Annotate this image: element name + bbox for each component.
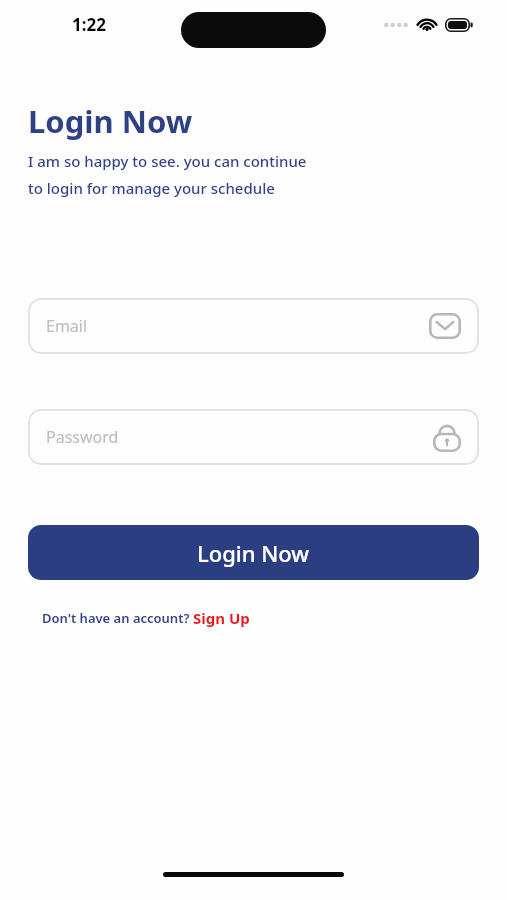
button[interactable]: Login Now (28, 525, 479, 580)
staticText: 1:22 (72, 13, 106, 36)
button[interactable]: Email (28, 298, 479, 354)
other: Email (429, 313, 461, 339)
button[interactable]: Password (28, 409, 479, 465)
staticText: Login Now (28, 100, 193, 142)
button[interactable]: Don't have an account? (42, 608, 250, 628)
staticText: Don't have an account? (42, 609, 193, 627)
staticText: Email (46, 315, 429, 337)
staticText: Sign Up (193, 608, 250, 628)
staticText: Password (46, 426, 433, 448)
other: Password (433, 422, 461, 452)
staticText: Login Now (197, 538, 310, 568)
staticText: I am so happy to see. you can continue t… (28, 151, 307, 199)
